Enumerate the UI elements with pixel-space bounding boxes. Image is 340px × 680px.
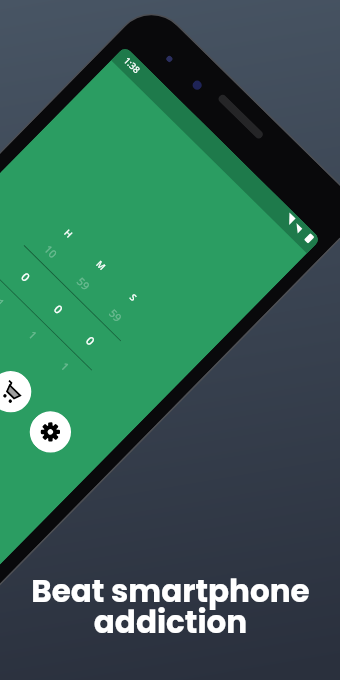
staticText: 10 bbox=[41, 242, 60, 261]
button[interactable]: Settings bbox=[21, 403, 80, 461]
staticText: 59 bbox=[74, 274, 93, 293]
staticText: M bbox=[94, 257, 109, 273]
staticText: H bbox=[62, 226, 75, 240]
staticText: 0 bbox=[18, 269, 34, 285]
staticText: 1 bbox=[57, 359, 73, 374]
button[interactable]: Remove ads bbox=[0, 362, 40, 421]
staticText: 59 bbox=[106, 305, 125, 325]
staticText: 1 bbox=[0, 295, 8, 310]
staticText: 1 bbox=[25, 327, 40, 342]
staticText: Beat smartphone addiction bbox=[31, 569, 310, 644]
staticText: 0 bbox=[83, 333, 98, 348]
staticText: 0 bbox=[51, 301, 66, 317]
staticText: S bbox=[127, 291, 140, 303]
staticText: 1:38 bbox=[121, 54, 143, 76]
